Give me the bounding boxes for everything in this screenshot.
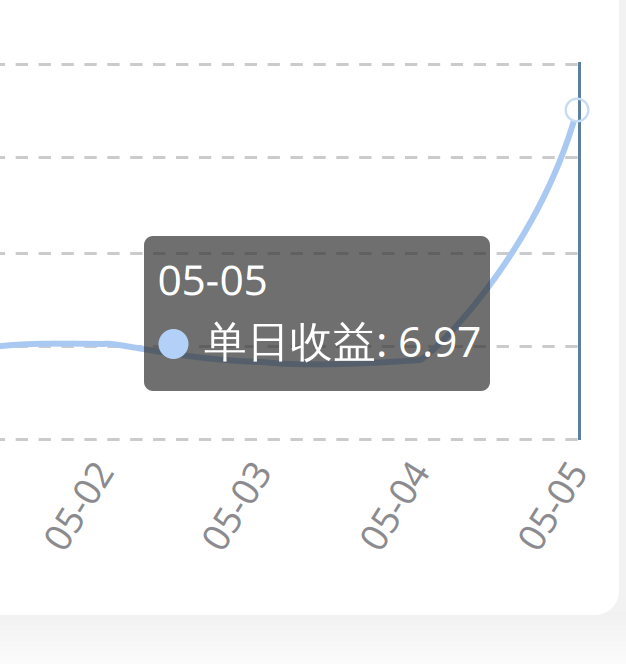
staticText: 05-03 xyxy=(187,481,283,530)
staticText: 05-02 xyxy=(29,481,125,530)
staticText: 05-04 xyxy=(345,481,441,530)
staticText: 05-05 xyxy=(503,481,599,530)
staticText: 05-05 xyxy=(157,251,267,307)
staticText: 单日收益: 6.97 xyxy=(204,312,481,369)
